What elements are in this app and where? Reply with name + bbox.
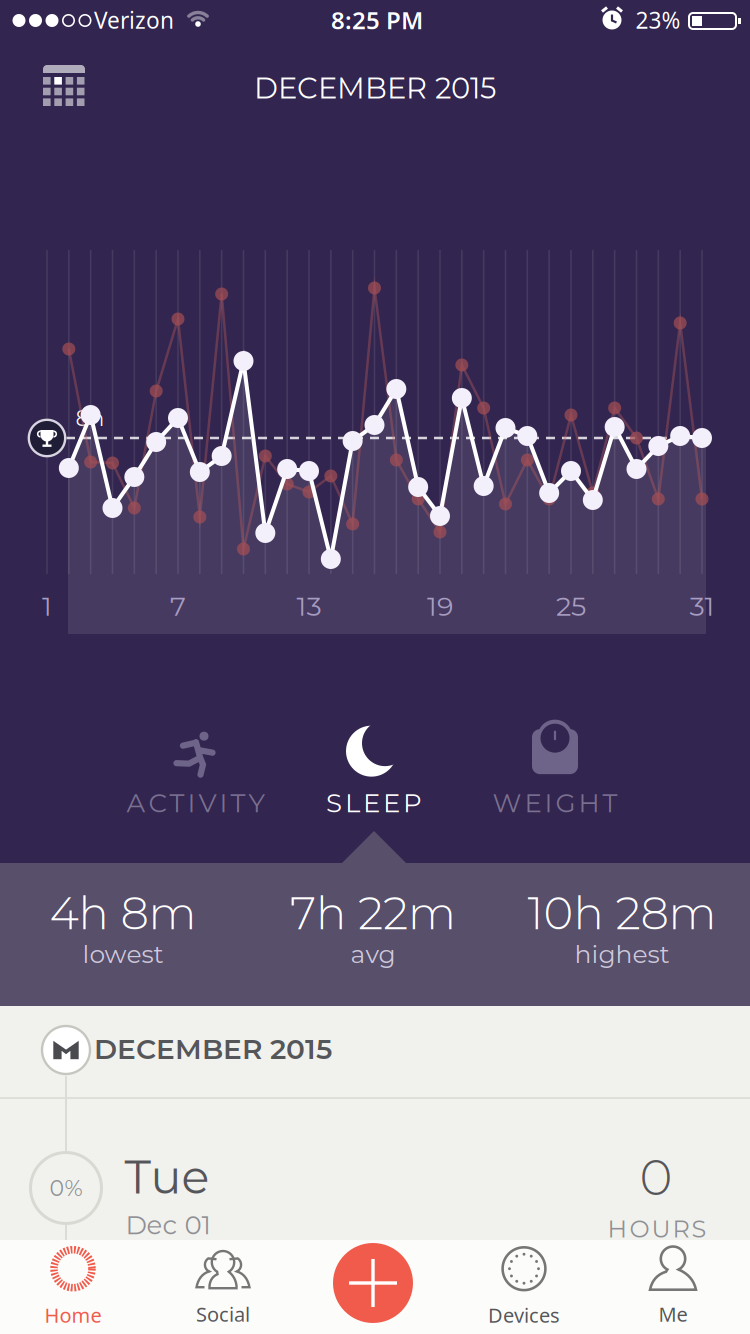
staticText: DECEMBER 2015 [94,1032,332,1066]
staticText: highest [574,939,669,969]
staticText: Devices [488,1302,560,1328]
staticText: Tue [124,1149,209,1205]
staticText: Home [44,1302,101,1328]
staticText: W E I G H T [492,787,617,819]
staticText: 7h 22m [290,886,456,940]
staticText: H O U R S [607,1214,706,1244]
staticText: 0% [49,1175,82,1201]
staticText: A C T I V I T Y [126,787,265,819]
button[interactable]: A C T I V I T Y [101,712,291,832]
button[interactable]: W E I G H T [460,712,650,832]
staticText: Social [196,1301,250,1327]
staticText: 10h 28m [527,886,716,940]
staticText: S L E E P [326,787,422,819]
staticText: 7 [170,589,186,622]
button[interactable]: Me [618,1241,728,1331]
staticText: 13 [296,589,321,622]
button[interactable]: Social [163,1241,283,1331]
staticText: 19 [427,589,453,622]
staticText: lowest [82,939,163,969]
button[interactable]: Home [13,1242,133,1332]
button[interactable]: S L E E P [289,710,459,832]
staticText: 25 [556,589,586,622]
staticText: Dec 01 [125,1209,210,1241]
staticText: 1 [42,589,52,622]
button[interactable]: 0% [0,1110,750,1242]
staticText: 31 [689,589,714,622]
button[interactable]: Log [333,1243,413,1323]
staticText: Me [658,1301,687,1327]
staticText: avg [350,939,395,969]
staticText: 8:25 PM [331,4,423,36]
button[interactable]: Calendar [34,53,94,113]
staticText: Verizon [94,5,174,35]
button[interactable]: Devices [459,1242,589,1332]
staticText: 0 [639,1146,672,1207]
staticText: 23% [635,5,680,35]
staticText: DECEMBER 2015 [254,70,496,106]
staticText: 4h 8m [49,886,196,940]
staticText: 8h [75,405,104,431]
